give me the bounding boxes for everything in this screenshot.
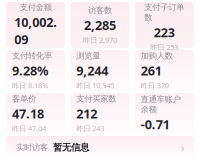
staticText: 昨日 8.18% [12,80,48,90]
button[interactable]: 实时访客 [6,136,194,159]
staticText: 客单价 [12,94,36,104]
staticText: 261 [141,62,162,79]
staticText: 支付买家数 [76,94,116,104]
staticText: 实时访客 [16,142,48,153]
staticText: 9,244 [76,62,108,79]
button[interactable]: 直通车账户余额 [135,93,194,134]
button[interactable]: 支付转化率 [6,50,65,91]
staticText: 暂无信息 [53,142,89,153]
staticText: 支付子订单数 [144,2,184,23]
staticText: 昨日 243 [76,123,104,133]
staticText: 浏览量 [76,51,100,61]
staticText: 昨日 2,970 [83,35,117,45]
staticText: 2,285 [84,16,116,34]
staticText: 支付金额 [20,2,52,12]
button[interactable]: 加购人数 [135,50,194,91]
staticText: 212 [76,105,97,122]
staticText: 223 [154,24,175,41]
staticText: 47.18 [12,105,44,122]
staticText: 昨日 10,945 [76,80,114,90]
button[interactable]: 支付买家数 [70,93,130,134]
staticText: 昨日 253 [150,42,178,52]
staticText: 直通车账户余额 [141,94,181,115]
staticText: 昨日 370 [141,80,169,90]
staticText: 昨日 47.04 [12,123,46,133]
button[interactable]: 客单价 [6,93,65,134]
button[interactable]: 支付子订单数 [135,2,194,48]
staticText: -0.71 [141,116,170,133]
staticText: 支付转化率 [12,51,52,61]
staticText: 昨日 11,431.6 [14,49,58,59]
staticText: › [181,140,184,155]
staticText: 访客数 [88,5,112,15]
button[interactable]: 支付金额 [6,2,65,48]
staticText: 10,002.09 [14,13,57,48]
button[interactable]: 访客数 [70,2,130,48]
button[interactable]: 浏览量 [70,50,130,91]
staticText: 9.28% [12,62,48,79]
staticText: 加购人数 [141,51,173,61]
